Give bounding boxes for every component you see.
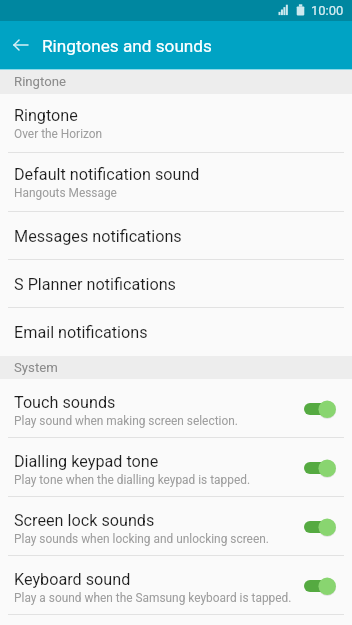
staticText: System: [14, 360, 58, 375]
staticText: S Planner notifications: [14, 275, 176, 294]
button[interactable]: Email notifications: [0, 308, 352, 356]
staticText: Over the Horizon: [14, 127, 103, 141]
staticText: Play sounds when locking and unlocking s…: [14, 532, 269, 546]
button[interactable]: Ringtone: [0, 94, 352, 153]
button[interactable]: Touch sounds: [0, 379, 352, 438]
button[interactable]: Toggle on: [304, 517, 337, 537]
staticText: Touch sounds: [14, 393, 116, 412]
button[interactable]: Toggle on: [304, 576, 337, 596]
staticText: Play a sound when the Samsung keyboard i…: [14, 591, 292, 605]
staticText: Dialling keypad tone: [14, 452, 159, 471]
staticText: Play tone when the dialling keypad is ta…: [14, 473, 251, 487]
staticText: 10:00: [311, 3, 344, 18]
button[interactable]: Toggle on: [304, 458, 337, 478]
staticText: Email notifications: [14, 323, 148, 342]
button[interactable]: Screen lock sounds: [0, 497, 352, 556]
staticText: Messages notifications: [14, 227, 182, 246]
button[interactable]: S Planner notifications: [0, 260, 352, 308]
button[interactable]: Messages notifications: [0, 212, 352, 260]
button[interactable]: Navigate up: [0, 21, 42, 69]
button[interactable]: Toggle on: [304, 399, 337, 419]
staticText: Ringtone: [14, 106, 78, 125]
staticText: Play sound when making screen selection.: [14, 414, 238, 428]
staticText: Keyboard sound: [14, 570, 131, 589]
button[interactable]: Dialling keypad tone: [0, 438, 352, 497]
staticText: Screen lock sounds: [14, 511, 155, 530]
button[interactable]: Keyboard sound: [0, 556, 352, 615]
staticText: Default notification sound: [14, 165, 200, 184]
staticText: Hangouts Message: [14, 186, 117, 200]
staticText: Ringtones and sounds: [42, 36, 212, 56]
staticText: Ringtone: [14, 74, 67, 89]
button[interactable]: Default notification sound: [0, 153, 352, 212]
